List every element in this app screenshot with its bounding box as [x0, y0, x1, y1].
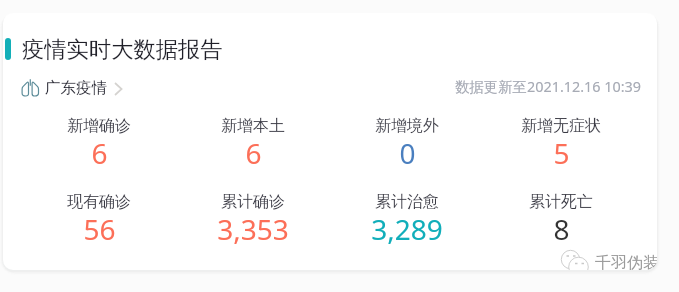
- staticText: 3,289: [371, 210, 443, 248]
- staticText: 累计死亡: [529, 192, 593, 212]
- staticText: 6: [91, 134, 108, 172]
- staticText: 累计确诊: [221, 192, 285, 212]
- staticText: 现有确诊: [67, 192, 131, 212]
- staticText: 新增无症状: [521, 116, 601, 136]
- staticText: 新增确诊: [67, 116, 131, 136]
- staticText: 千羽伪装: [595, 253, 657, 270]
- staticText: 56: [83, 210, 116, 248]
- staticText: 新增境外: [375, 116, 439, 136]
- staticText: 8: [553, 210, 570, 248]
- staticText: 疫情实时大数据报告: [22, 36, 223, 64]
- staticText: 数据更新至2021.12.16 10:39: [455, 77, 642, 97]
- staticText: 广东疫情: [45, 78, 108, 98]
- staticText: 3,353: [217, 210, 289, 248]
- button[interactable]: 广东疫情: [21, 77, 123, 97]
- staticText: 0: [399, 134, 416, 172]
- staticText: 5: [553, 134, 570, 172]
- staticText: 新增本土: [221, 116, 285, 136]
- staticText: 累计治愈: [375, 192, 439, 212]
- staticText: 6: [245, 134, 262, 172]
